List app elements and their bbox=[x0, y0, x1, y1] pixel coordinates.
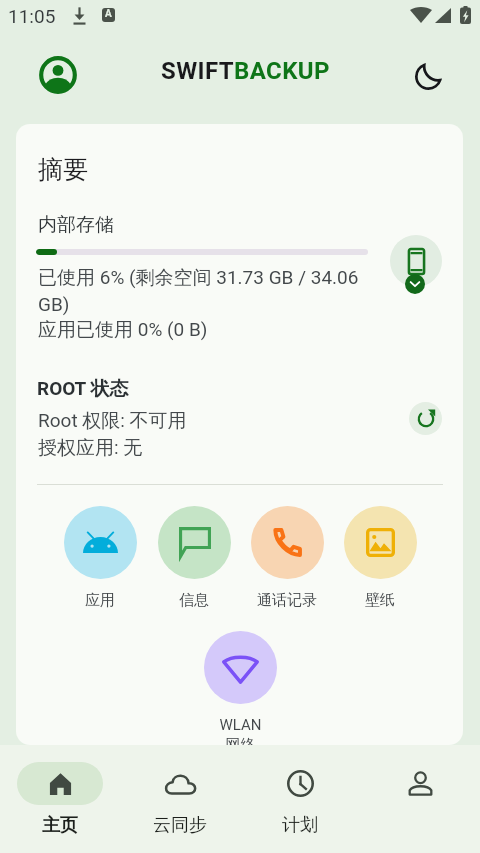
staticText: 11:05 bbox=[8, 5, 56, 27]
button[interactable]: WLAN 网络 bbox=[187, 631, 293, 745]
button[interactable]: Account bbox=[36, 53, 80, 97]
staticText: 应用已使用 0% (0 B) bbox=[38, 318, 208, 342]
button[interactable]: 主页 bbox=[0, 762, 120, 837]
button[interactable]: Refresh root status bbox=[409, 402, 442, 435]
button[interactable]: 通话记录 bbox=[234, 506, 340, 610]
button[interactable]: 云同步 bbox=[120, 762, 240, 837]
staticText: 应用 bbox=[85, 591, 115, 610]
button[interactable]: 计划 bbox=[240, 762, 360, 837]
button[interactable]: Toggle dark mode bbox=[407, 55, 449, 97]
button[interactable]: Profile bbox=[360, 762, 480, 814]
button[interactable]: 信息 bbox=[141, 506, 247, 610]
staticText: 摘要 bbox=[38, 154, 88, 185]
button[interactable]: Expand storage details bbox=[405, 274, 425, 294]
button[interactable]: 应用 bbox=[47, 506, 153, 610]
staticText: Root 权限: 不可用 bbox=[38, 409, 187, 433]
staticText: WLAN 网络 bbox=[219, 716, 262, 745]
staticText: 授权应用: 无 bbox=[38, 436, 143, 460]
staticText: 壁纸 bbox=[365, 591, 395, 610]
staticText: SWIFTBACKUP bbox=[161, 57, 330, 85]
staticText: A bbox=[105, 8, 112, 20]
staticText: 已使用 6% (剩余空间 31.73 GB / 34.06 GB) bbox=[38, 266, 373, 315]
staticText: 信息 bbox=[179, 591, 209, 610]
staticText: 内部存储 bbox=[38, 213, 114, 237]
staticText: 计划 bbox=[282, 814, 318, 837]
staticText: 主页 bbox=[42, 814, 78, 837]
staticText: 通话记录 bbox=[257, 591, 317, 610]
staticText: 云同步 bbox=[153, 814, 207, 837]
staticText: ROOT 状态 bbox=[37, 377, 129, 401]
button[interactable]: 壁纸 bbox=[327, 506, 433, 610]
other: Profile bbox=[377, 762, 463, 805]
